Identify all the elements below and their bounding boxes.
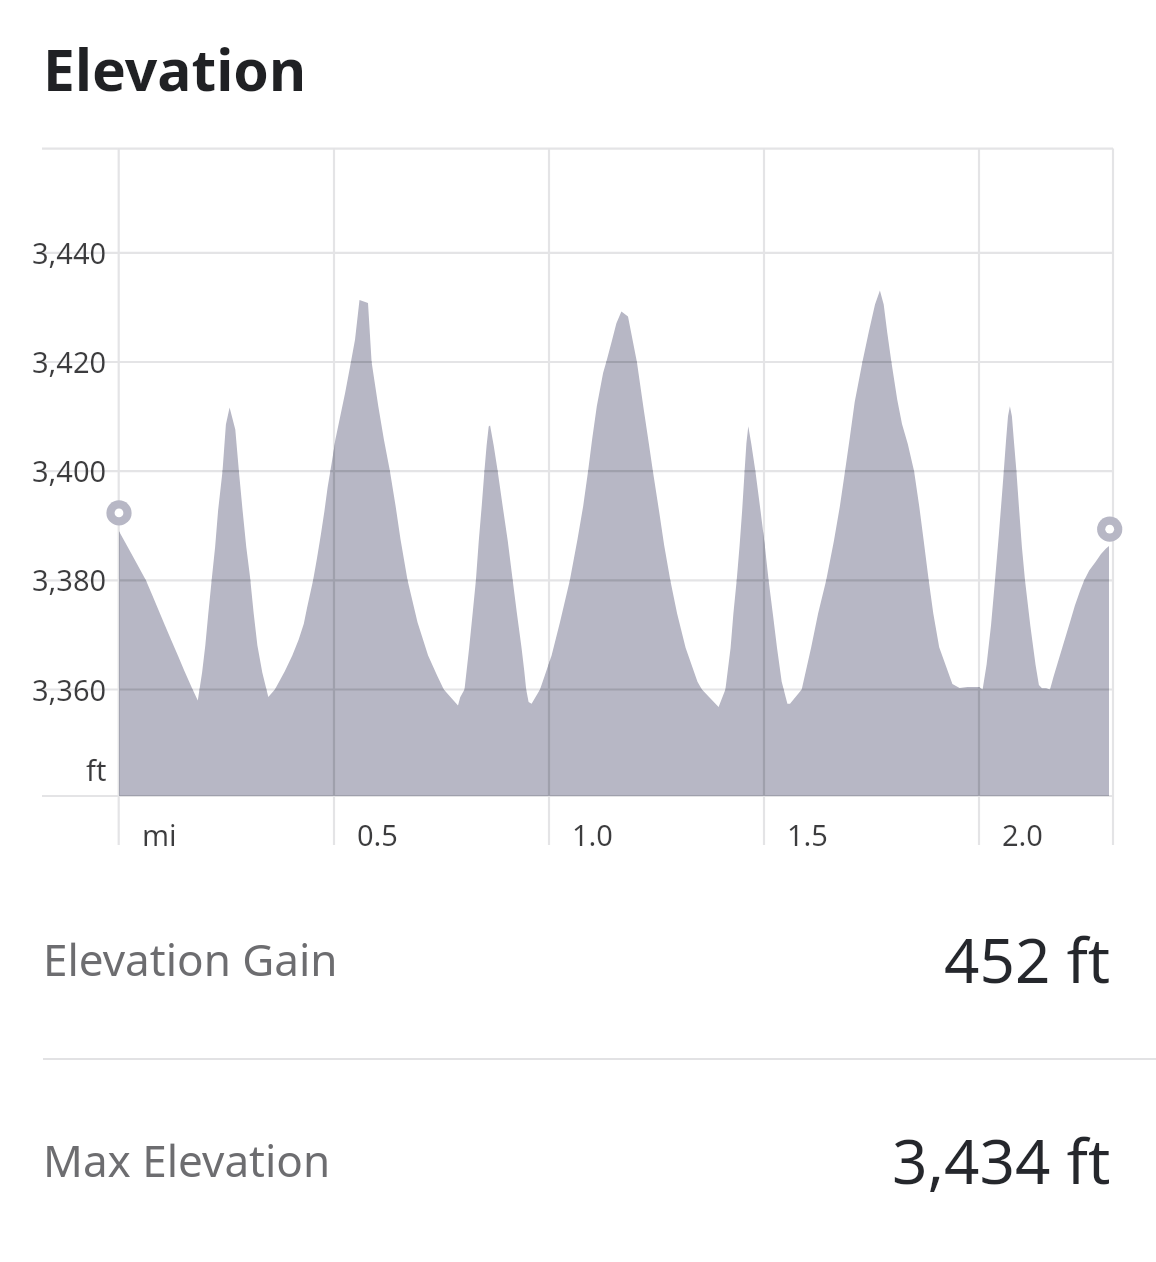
staticText: Elevation Gain — [43, 929, 338, 989]
staticText: 3,400 — [32, 451, 107, 490]
staticText: ft — [86, 750, 107, 789]
staticText: Elevation — [43, 30, 306, 108]
staticText: 2.0 — [1002, 815, 1043, 854]
staticText: mi — [142, 815, 177, 854]
button[interactable]: Max Elevation — [0, 1071, 1156, 1249]
button[interactable]: Elevation Gain — [0, 870, 1156, 1048]
staticText: 0.5 — [357, 815, 398, 854]
staticText: 3,434 ft — [892, 1118, 1111, 1202]
staticText: Max Elevation — [43, 1130, 331, 1190]
other: Elevation profile chart — [0, 0, 1156, 1262]
staticText: 1.5 — [787, 815, 828, 854]
staticText: 3,420 — [32, 342, 107, 381]
staticText: 3,440 — [32, 233, 107, 272]
staticText: 452 ft — [944, 917, 1111, 1001]
staticText: 3,360 — [32, 670, 107, 709]
staticText: 3,380 — [32, 560, 107, 599]
staticText: 1.0 — [572, 815, 613, 854]
